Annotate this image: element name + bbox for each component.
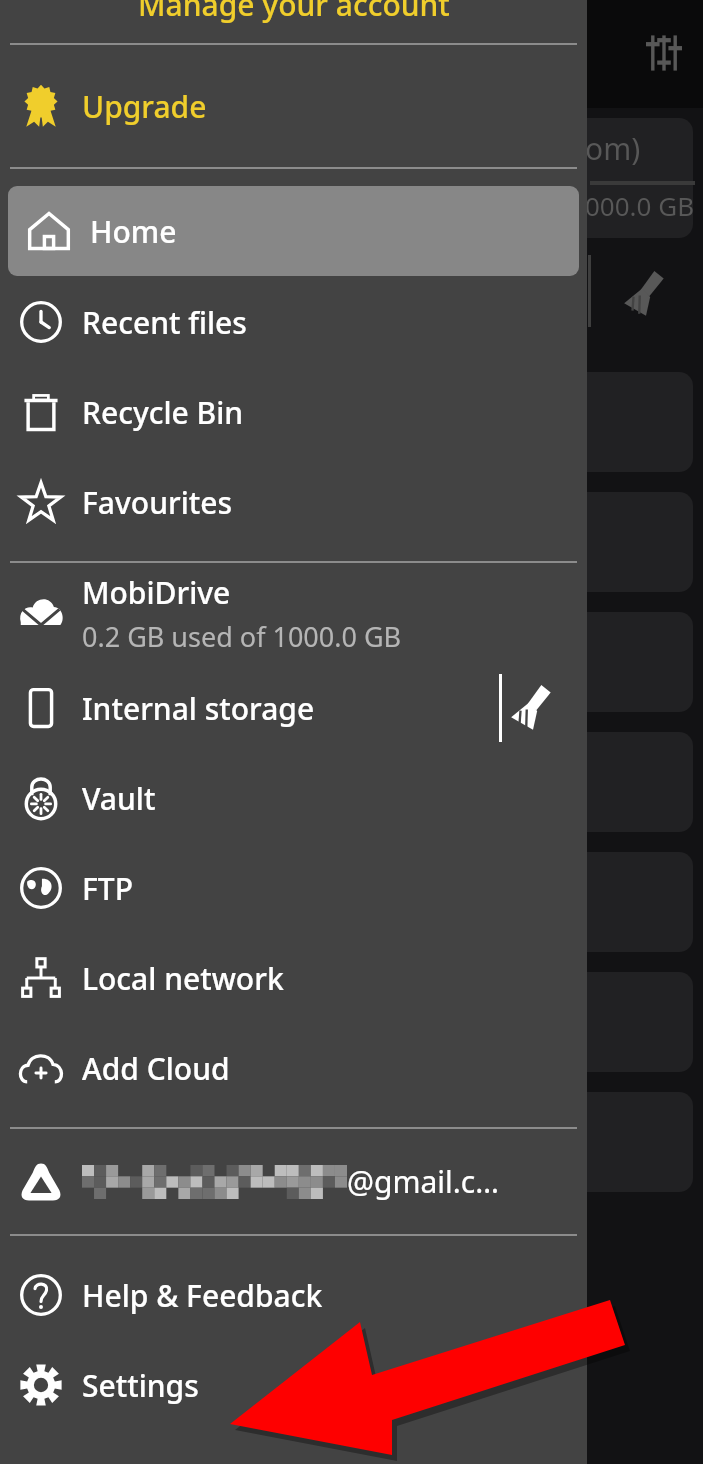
staticText: Recycle Bin [82, 392, 244, 433]
button[interactable]: Manage your account [0, 0, 587, 43]
button[interactable]: Recycle Bin [0, 367, 587, 457]
staticText: om) [585, 128, 641, 169]
staticText: 000.0 GB [585, 188, 695, 223]
button[interactable]: Recent files [0, 277, 587, 367]
staticText: Vault [82, 778, 156, 819]
button[interactable]: Vault [0, 753, 587, 843]
button[interactable]: FTP [0, 843, 587, 933]
staticText: @gmail.c… [347, 1161, 499, 1202]
button[interactable] [440, 732, 693, 832]
button[interactable]: Home [8, 186, 579, 276]
staticText: Recent files [82, 302, 247, 343]
staticText: Internal storage [82, 688, 315, 729]
staticText: FTP [82, 868, 133, 909]
button[interactable] [440, 852, 693, 952]
button[interactable] [440, 492, 693, 592]
staticText: Settings [82, 1365, 199, 1406]
button[interactable]: Filter [636, 25, 692, 81]
button[interactable]: Add Cloud [0, 1023, 587, 1113]
staticText: MobiDrive [82, 572, 231, 613]
button[interactable]: Help & Feedback [0, 1250, 587, 1340]
button[interactable]: @gmail.c… [0, 1129, 587, 1234]
staticText: Local network [82, 958, 284, 999]
button[interactable] [440, 1092, 693, 1192]
button[interactable] [440, 118, 693, 238]
button[interactable] [440, 372, 693, 472]
button[interactable]: Settings [0, 1340, 587, 1430]
staticText: Favourites [82, 482, 233, 523]
button[interactable]: Internal storage [0, 663, 587, 753]
button[interactable] [440, 612, 693, 712]
staticText: Add Cloud [82, 1048, 230, 1089]
staticText: Home [90, 211, 177, 252]
button[interactable]: Local network [0, 933, 587, 1023]
button[interactable] [440, 972, 693, 1072]
staticText: Upgrade [82, 86, 207, 127]
button[interactable]: MobiDrive [0, 563, 587, 663]
button[interactable]: Clean storage [490, 663, 575, 753]
staticText: Manage your account [138, 0, 450, 25]
button[interactable]: Upgrade [0, 45, 587, 167]
staticText: Help & Feedback [82, 1275, 323, 1316]
staticText: 0.2 GB used of 1000.0 GB [82, 618, 402, 655]
button[interactable]: Favourites [0, 457, 587, 547]
